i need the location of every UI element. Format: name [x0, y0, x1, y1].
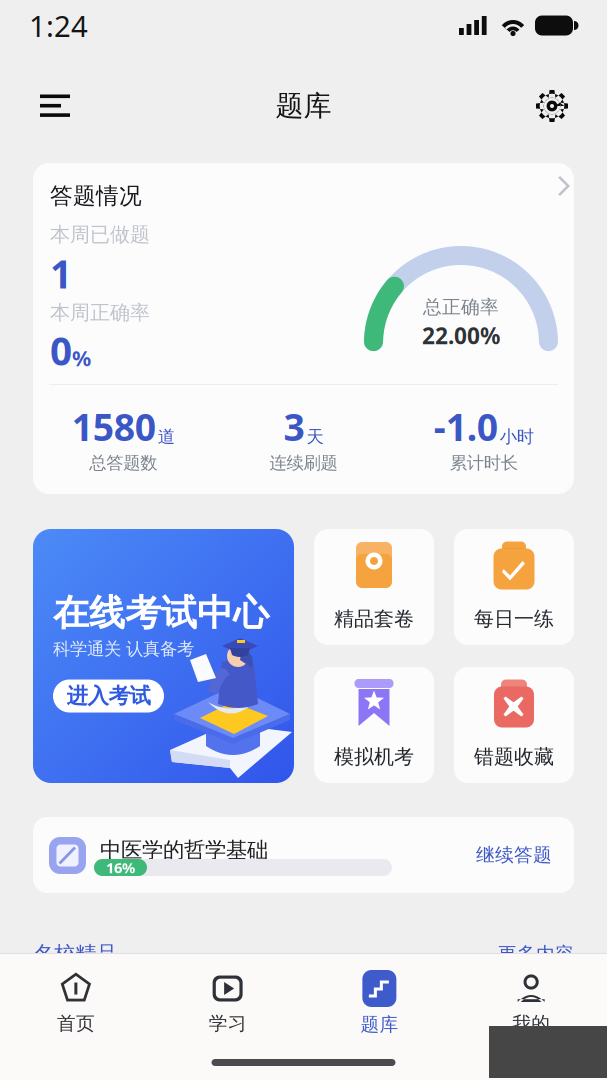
staticText: 1:24 — [29, 6, 88, 45]
staticText: 题库 — [360, 1013, 398, 1036]
staticText: 总正确率 — [423, 295, 499, 318]
staticText: 本周已做题 — [50, 222, 150, 247]
staticText: 我的 — [512, 1012, 550, 1035]
staticText: 精品套卷 — [334, 606, 414, 631]
button[interactable]: 学习 — [152, 971, 304, 1035]
staticText: 每日一练 — [474, 606, 554, 631]
staticText: 学习 — [209, 1012, 247, 1035]
button[interactable]: Menu — [28, 79, 82, 133]
staticText: 更多内容 — [498, 943, 574, 965]
button[interactable]: 题库 — [303, 970, 455, 1036]
staticText: 科学通关 认真备考 — [53, 638, 194, 659]
button[interactable]: 中医学的哲学基础 — [33, 817, 574, 893]
staticText: 题库 — [275, 89, 331, 123]
button[interactable]: 模拟机考 — [314, 667, 434, 783]
staticText: 在线考试中心 — [53, 591, 269, 635]
staticText: 1 — [50, 248, 72, 299]
button[interactable]: Settings — [525, 79, 579, 133]
staticText: -1.0 — [434, 402, 498, 451]
staticText: 连续刷题 — [269, 452, 337, 474]
staticText: 答题情况 — [50, 182, 142, 210]
staticText: 22.00% — [422, 320, 500, 350]
button[interactable]: 进入考试 — [53, 679, 164, 712]
staticText: 继续答题 — [476, 843, 552, 866]
button[interactable]: 首页 — [0, 971, 152, 1035]
staticText: 3 — [283, 402, 304, 451]
button[interactable]: 精品套卷 — [314, 529, 434, 645]
staticText: 累计时长 — [450, 452, 518, 474]
staticText: 中医学的哲学基础 — [100, 837, 268, 863]
staticText: 进入考试 — [66, 683, 150, 709]
staticText: 天 — [306, 426, 323, 447]
staticText: 名校精品 — [33, 941, 117, 967]
staticText: 首页 — [57, 1012, 95, 1035]
staticText: 1580 — [72, 402, 156, 451]
staticText: 16% — [106, 858, 135, 877]
button[interactable]: 错题收藏 — [454, 667, 574, 783]
staticText: 本周正确率 — [50, 300, 150, 325]
button[interactable]: 每日一练 — [454, 529, 574, 645]
staticText: 错题收藏 — [474, 744, 554, 769]
staticText: 道 — [158, 426, 175, 447]
staticText: 小时 — [500, 426, 534, 447]
staticText: 模拟机考 — [334, 744, 414, 769]
staticText: 0 — [50, 325, 72, 376]
button[interactable]: 我的 — [455, 971, 607, 1035]
staticText: 总答题数 — [89, 452, 157, 474]
button[interactable]: 在线考试中心 — [33, 529, 294, 783]
staticText: % — [72, 344, 91, 372]
